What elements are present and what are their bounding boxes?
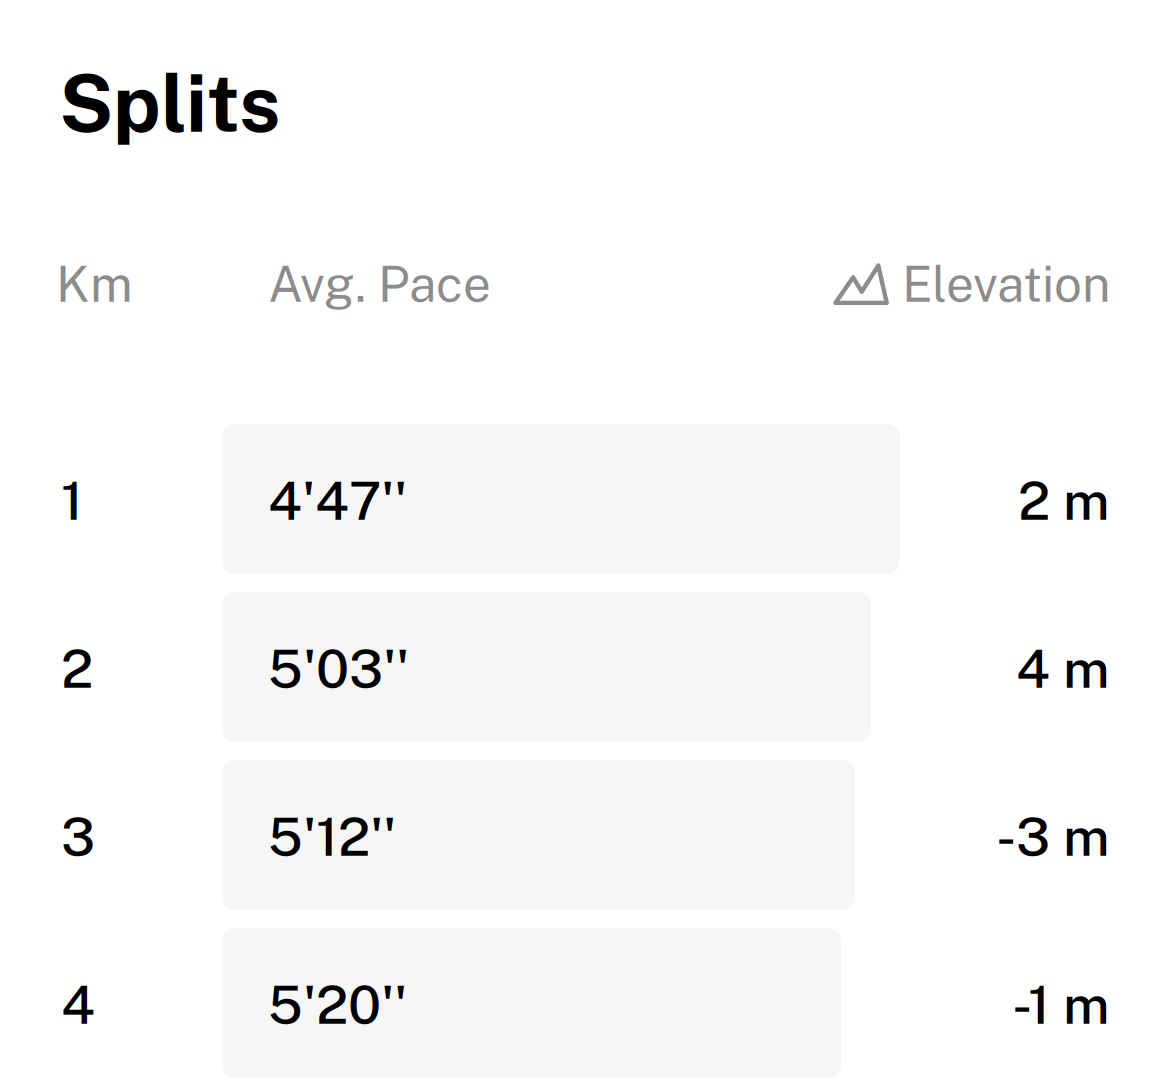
staticText: 3 bbox=[61, 805, 95, 868]
staticText: 2 m bbox=[1018, 469, 1110, 532]
staticText: 2 bbox=[61, 637, 93, 700]
staticText: -3 m bbox=[996, 805, 1110, 868]
staticText: 4 m bbox=[1016, 637, 1110, 700]
button[interactable]: 2 bbox=[0, 592, 1170, 760]
staticText: 1 bbox=[61, 469, 83, 532]
staticText: Elevation bbox=[902, 255, 1110, 313]
staticText: Avg. Pace bbox=[268, 255, 491, 313]
staticText: Splits bbox=[59, 57, 280, 149]
staticText: 4 bbox=[61, 973, 95, 1036]
button[interactable]: 3 bbox=[0, 760, 1170, 928]
staticText: 5'12'' bbox=[268, 805, 396, 868]
staticText: 5'20'' bbox=[268, 973, 407, 1036]
staticText: 5'03'' bbox=[268, 637, 409, 700]
button[interactable]: 1 bbox=[0, 424, 1170, 592]
staticText: Km bbox=[56, 255, 133, 313]
staticText: 4'47'' bbox=[268, 469, 407, 532]
button[interactable]: Elevation bbox=[833, 264, 1112, 312]
staticText: -1 m bbox=[1012, 973, 1110, 1036]
button[interactable]: 4 bbox=[0, 928, 1170, 1085]
